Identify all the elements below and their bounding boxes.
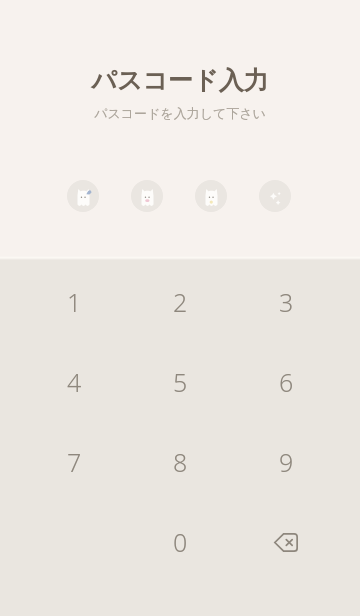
button[interactable]: 9 bbox=[233, 422, 339, 502]
staticText: 6 bbox=[279, 365, 294, 399]
staticText: 9 bbox=[279, 445, 294, 479]
button[interactable]: 2 bbox=[127, 262, 233, 342]
button[interactable]: 6 bbox=[233, 342, 339, 422]
staticText: 0 bbox=[173, 525, 188, 559]
staticText: 7 bbox=[67, 445, 82, 479]
staticText: パスコードを入力して下さい bbox=[94, 105, 266, 121]
button[interactable]: 4 bbox=[21, 342, 127, 422]
staticText: 2 bbox=[173, 285, 188, 319]
staticText: 3 bbox=[279, 285, 294, 319]
staticText: 8 bbox=[173, 445, 188, 479]
button[interactable]: 1 bbox=[21, 262, 127, 342]
button[interactable]: 3 bbox=[233, 262, 339, 342]
staticText: パスコード入力 bbox=[91, 65, 269, 96]
button[interactable]: 8 bbox=[127, 422, 233, 502]
other: Delete bbox=[274, 533, 298, 552]
staticText: 5 bbox=[173, 365, 188, 399]
staticText: 4 bbox=[67, 365, 82, 399]
staticText: 1 bbox=[67, 285, 82, 319]
button[interactable]: 0 bbox=[127, 502, 233, 582]
button[interactable]: Delete bbox=[233, 502, 339, 582]
button[interactable]: 7 bbox=[21, 422, 127, 502]
button[interactable]: 5 bbox=[127, 342, 233, 422]
